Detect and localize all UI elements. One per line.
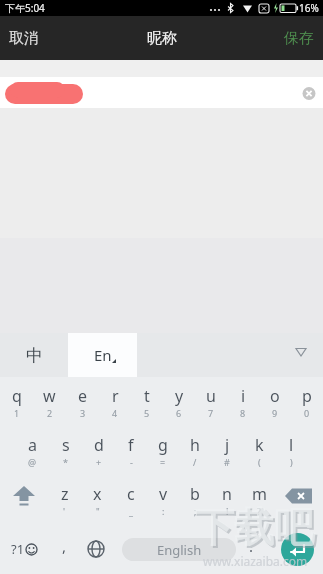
- button[interactable]: j: [211, 426, 243, 475]
- staticText: 昵称: [147, 29, 177, 48]
- staticText: 3: [80, 407, 86, 419]
- button[interactable]: [0, 475, 48, 524]
- button[interactable]: [281, 533, 314, 566]
- staticText: +: [96, 456, 102, 468]
- button[interactable]: h: [179, 426, 211, 475]
- button[interactable]: w: [33, 377, 66, 426]
- button[interactable]: 取消: [0, 19, 48, 58]
- staticText: !: [226, 505, 229, 517]
- staticText: k: [255, 434, 264, 456]
- button[interactable]: 中: [0, 333, 68, 377]
- staticText: w: [43, 385, 56, 407]
- staticText: 2: [47, 407, 53, 419]
- staticText: ': [63, 505, 66, 517]
- button[interactable]: y: [163, 377, 195, 426]
- staticText: ): [290, 456, 293, 468]
- staticText: y: [175, 385, 184, 407]
- staticText: 下载吧: [196, 504, 316, 554]
- staticText: 8: [240, 407, 246, 419]
- staticText: u: [206, 385, 216, 407]
- staticText: www.xiazaiba.com: [203, 553, 308, 569]
- button[interactable]: x: [81, 475, 114, 524]
- button[interactable]: p: [291, 377, 323, 426]
- staticText: a: [28, 434, 37, 456]
- staticText: f: [128, 434, 134, 456]
- button[interactable]: c: [114, 475, 147, 524]
- staticText: 下载吧: [194, 502, 314, 552]
- staticText: d: [94, 434, 104, 456]
- button[interactable]: ,: [48, 524, 80, 574]
- staticText: n: [222, 483, 232, 505]
- button[interactable]: [0, 77, 323, 108]
- staticText: ,: [62, 536, 67, 556]
- button[interactable]: v: [147, 475, 179, 524]
- staticText: 16%: [299, 1, 319, 15]
- staticText: c: [127, 483, 135, 505]
- staticText: 1: [14, 407, 20, 419]
- button[interactable]: [80, 524, 112, 574]
- button[interactable]: n: [211, 475, 243, 524]
- button[interactable]: En: [68, 333, 137, 377]
- staticText: _: [129, 505, 133, 517]
- button[interactable]: m: [243, 475, 275, 524]
- button[interactable]: t: [131, 377, 163, 426]
- button[interactable]: b: [179, 475, 211, 524]
- staticText: =: [160, 456, 166, 468]
- staticText: g: [158, 434, 168, 456]
- staticText: r: [112, 385, 119, 407]
- staticText: o: [270, 385, 280, 407]
- staticText: x: [93, 483, 102, 505]
- staticText: e: [78, 385, 88, 407]
- staticText: (: [258, 456, 261, 468]
- button[interactable]: [279, 333, 323, 377]
- button[interactable]: e: [66, 377, 99, 426]
- staticText: m: [252, 483, 267, 505]
- staticText: l: [289, 434, 294, 456]
- staticText: -: [130, 456, 133, 468]
- button[interactable]: k: [243, 426, 275, 475]
- button[interactable]: f: [115, 426, 147, 475]
- button[interactable]: u: [195, 377, 227, 426]
- staticText: @: [28, 456, 37, 468]
- staticText: ;: [194, 505, 197, 517]
- button[interactable]: r: [99, 377, 131, 426]
- button[interactable]: s: [49, 426, 82, 475]
- button[interactable]: 保存: [275, 19, 323, 58]
- staticText: En: [94, 345, 112, 365]
- staticText: 9: [272, 407, 278, 419]
- button[interactable]: ?1: [0, 524, 48, 574]
- staticText: 7: [208, 407, 214, 419]
- staticText: b: [190, 483, 200, 505]
- staticText: 5: [144, 407, 150, 419]
- staticText: z: [61, 483, 69, 505]
- staticText: /: [193, 456, 197, 468]
- button[interactable]: d: [82, 426, 115, 475]
- button[interactable]: q: [0, 377, 33, 426]
- staticText: 0: [304, 407, 310, 419]
- staticText: 取消: [9, 29, 39, 48]
- staticText: i: [241, 385, 246, 407]
- button[interactable]: [275, 475, 323, 524]
- staticText: English: [157, 541, 202, 559]
- staticText: ?: [257, 505, 261, 517]
- staticText: :: [162, 505, 165, 517]
- staticText: q: [12, 385, 22, 407]
- button[interactable]: l: [275, 426, 307, 475]
- staticText: 6: [176, 407, 182, 419]
- staticText: *: [63, 456, 68, 468]
- button[interactable]: z: [48, 475, 81, 524]
- button[interactable]: i: [227, 377, 259, 426]
- button[interactable]: o: [259, 377, 291, 426]
- staticText: ?1: [11, 540, 25, 558]
- staticText: t: [144, 385, 150, 407]
- button[interactable]: g: [147, 426, 179, 475]
- staticText: h: [190, 434, 200, 456]
- button[interactable]: a: [16, 426, 49, 475]
- staticText: 中: [26, 345, 43, 366]
- staticText: 下午5:04: [5, 1, 45, 15]
- staticText: #: [224, 456, 230, 468]
- button[interactable]: English: [122, 538, 236, 561]
- staticText: ": [96, 505, 100, 517]
- button[interactable]: .: [236, 524, 266, 574]
- staticText: 4: [112, 407, 118, 419]
